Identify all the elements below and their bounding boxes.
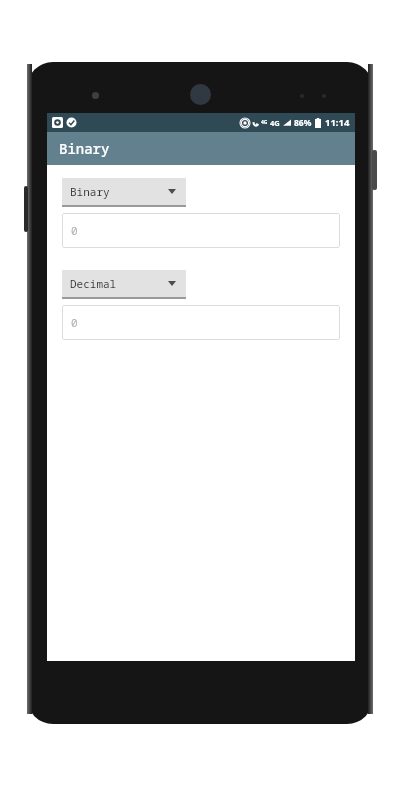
button[interactable]: 0 [62,213,340,248]
staticText: Binary [70,184,110,199]
button[interactable]: 0 [62,305,340,340]
staticText: 86% [294,117,312,129]
staticText: 4G [270,118,280,128]
staticText: Decimal [70,276,117,291]
staticText: 11:14 [325,116,350,129]
staticText: 4G [261,119,268,126]
staticText: 0 [71,223,78,238]
button[interactable]: Decimal number base selector [62,270,186,299]
staticText: Binary [59,139,110,158]
button[interactable]: Binary number base selector [62,178,186,207]
staticText: 0 [71,315,78,330]
